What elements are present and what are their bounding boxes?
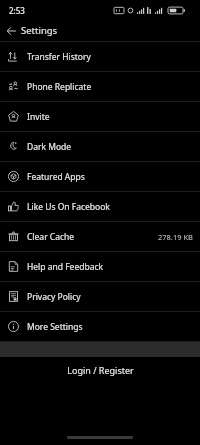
- staticText: Settings: [21, 24, 58, 37]
- staticText: 2:53: [9, 5, 25, 16]
- button[interactable]: More Settings: [0, 312, 200, 341]
- staticText: Login / Register: [67, 364, 134, 376]
- staticText: Help and Feedback: [27, 261, 104, 273]
- button[interactable]: Transfer History: [0, 42, 200, 71]
- staticText: More Settings: [27, 321, 83, 333]
- button[interactable]: Like Us On Facebook: [0, 192, 200, 221]
- staticText: Featured Apps: [27, 171, 85, 183]
- staticText: Like Us On Facebook: [27, 201, 110, 213]
- staticText: Dark Mode: [27, 141, 72, 153]
- staticText: Privacy Policy: [27, 291, 81, 303]
- button[interactable]: Back: [0, 20, 21, 41]
- button[interactable]: Invite: [0, 102, 200, 131]
- staticText: Invite: [27, 111, 50, 123]
- button[interactable]: Help and Feedback: [0, 252, 200, 281]
- button[interactable]: Dark Mode: [0, 132, 200, 161]
- staticText: Phone Replicate: [27, 81, 92, 93]
- button[interactable]: Phone Replicate: [0, 72, 200, 101]
- staticText: Clear Cache: [27, 231, 75, 243]
- button[interactable]: Privacy Policy: [0, 282, 200, 311]
- button[interactable]: Login / Register: [0, 357, 200, 383]
- staticText: Transfer History: [27, 51, 91, 63]
- button[interactable]: Clear Cache: [0, 222, 200, 251]
- button[interactable]: Featured Apps: [0, 162, 200, 191]
- staticText: 278.19 KB: [158, 232, 193, 242]
